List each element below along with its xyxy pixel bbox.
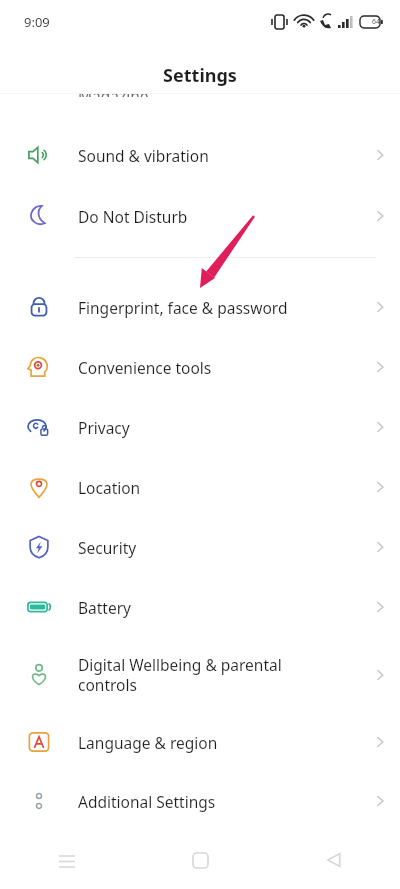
button[interactable]: Fingerprint, face & password [0,277,400,337]
button[interactable]: Convenience tools [0,337,400,397]
staticText: Additional Settings [78,791,330,812]
staticText: Language & region [78,732,330,753]
staticText: Magazine [78,94,149,97]
button[interactable]: Do Not Disturb [0,186,400,246]
staticText: Sound & vibration [78,145,330,166]
button[interactable]: Additional Settings [0,771,400,831]
staticText: Location [78,477,330,498]
button[interactable]: Digital Wellbeing & parental controls [0,645,400,705]
button[interactable]: Security [0,517,400,577]
staticText: 9:09 [24,13,50,31]
staticText: Digital Wellbeing & parental controls [78,654,330,696]
staticText: 64 [372,17,381,27]
button[interactable]: Sound & vibration [0,125,400,185]
button[interactable]: Battery [0,577,400,637]
staticText: Battery [78,597,330,618]
button[interactable]: Privacy [0,397,400,457]
staticText: Do Not Disturb [78,206,330,227]
staticText: Settings [163,63,237,88]
button[interactable]: Language & region [0,712,400,772]
staticText: Convenience tools [78,357,330,378]
staticText: Security [78,537,330,558]
button[interactable]: Back [267,831,400,889]
button[interactable]: Recent apps [0,831,134,889]
button[interactable]: Location [0,457,400,517]
button[interactable]: Home [134,831,267,889]
staticText: Fingerprint, face & password [78,297,330,318]
staticText: Privacy [78,417,330,438]
